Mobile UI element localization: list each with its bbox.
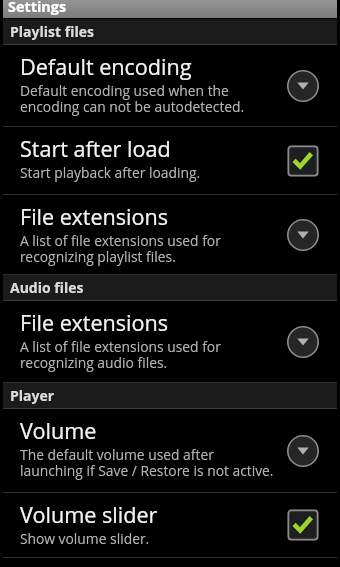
button[interactable]: Start after load bbox=[3, 127, 337, 195]
button[interactable]: File extensions bbox=[3, 195, 337, 275]
button[interactable]: Open options bbox=[275, 409, 337, 492]
staticText: A list of file extensions used for recog… bbox=[20, 337, 221, 372]
staticText: The default volume used after launching … bbox=[20, 445, 274, 480]
staticText: Playlist files bbox=[10, 22, 94, 41]
staticText: Settings bbox=[8, 0, 67, 16]
button[interactable]: Default encoding bbox=[3, 45, 337, 127]
staticText: File extensions bbox=[20, 202, 169, 231]
staticText: Start after load bbox=[20, 134, 171, 163]
staticText: Start playback after loading. bbox=[20, 163, 201, 182]
button[interactable]: Open options bbox=[275, 195, 337, 274]
button[interactable]: Toggle setting bbox=[275, 127, 337, 194]
button[interactable]: File extensions bbox=[3, 301, 337, 383]
button[interactable]: Volume slider bbox=[3, 493, 337, 558]
staticText: Volume slider bbox=[20, 500, 158, 529]
staticText: File extensions bbox=[20, 308, 169, 337]
staticText: Volume bbox=[20, 416, 97, 445]
staticText: Player bbox=[10, 386, 55, 405]
staticText: Audio files bbox=[10, 278, 84, 297]
staticText: Show volume slider. bbox=[20, 529, 150, 548]
staticText: Default encoding bbox=[20, 52, 192, 81]
button[interactable]: Open options bbox=[275, 301, 337, 382]
button[interactable]: Open options bbox=[275, 45, 337, 126]
button[interactable]: Toggle setting bbox=[275, 493, 337, 557]
staticText: Default encoding used when the encoding … bbox=[20, 81, 245, 116]
button[interactable]: Volume bbox=[3, 409, 337, 493]
staticText: A list of file extensions used for recog… bbox=[20, 231, 221, 266]
